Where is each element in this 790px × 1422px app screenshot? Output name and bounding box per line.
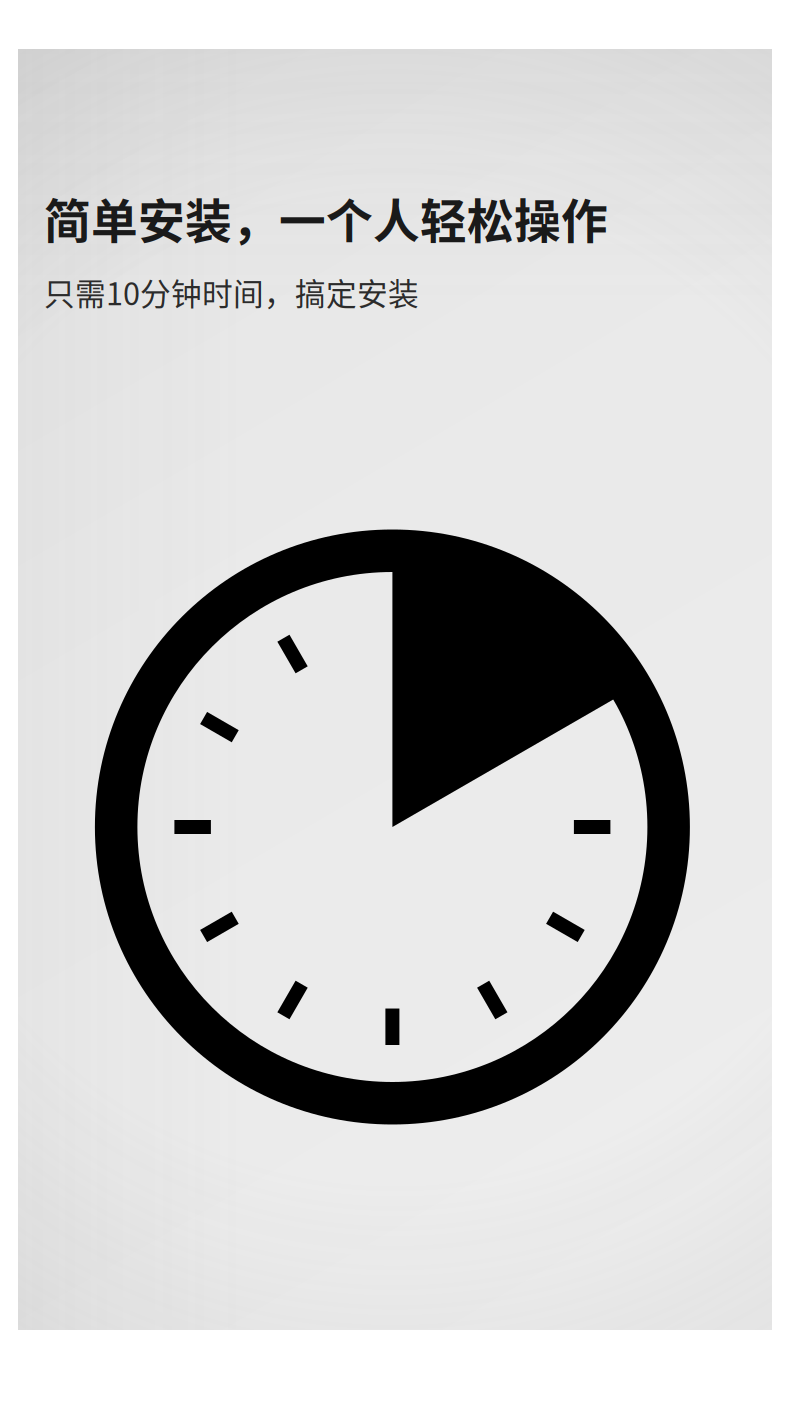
staticText: 简单安装，一个人轻松操作 bbox=[44, 184, 608, 252]
staticText: 只需10分钟时间，搞定安装 bbox=[44, 270, 419, 314]
